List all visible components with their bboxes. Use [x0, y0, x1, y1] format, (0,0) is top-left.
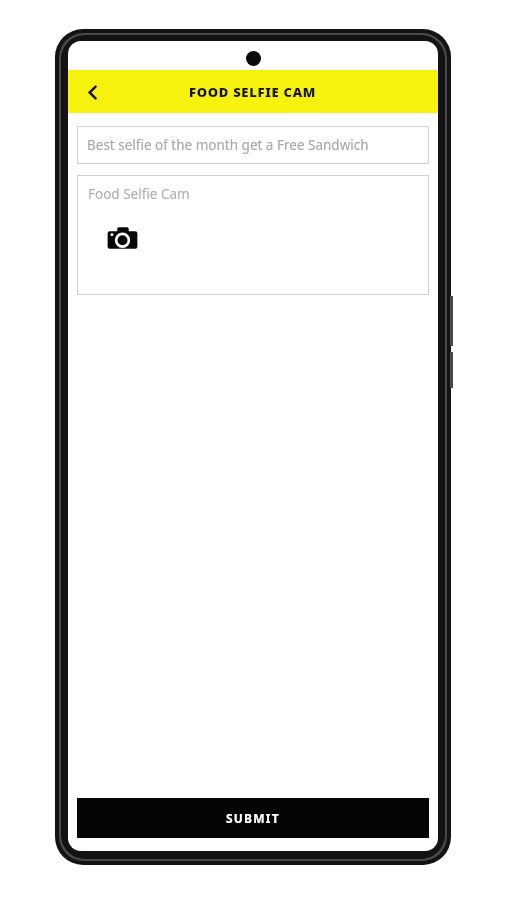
staticText: SUBMIT: [226, 810, 280, 826]
button[interactable]: Back: [76, 76, 108, 108]
button[interactable]: Best selfie of the month get a Free Sand…: [77, 126, 429, 164]
button[interactable]: Take photo: [104, 220, 140, 256]
staticText: Best selfie of the month get a Free Sand…: [87, 136, 369, 154]
button[interactable]: SUBMIT: [77, 798, 429, 838]
staticText: FOOD SELFIE CAM: [189, 83, 317, 101]
staticText: Food Selfie Cam: [88, 185, 190, 203]
